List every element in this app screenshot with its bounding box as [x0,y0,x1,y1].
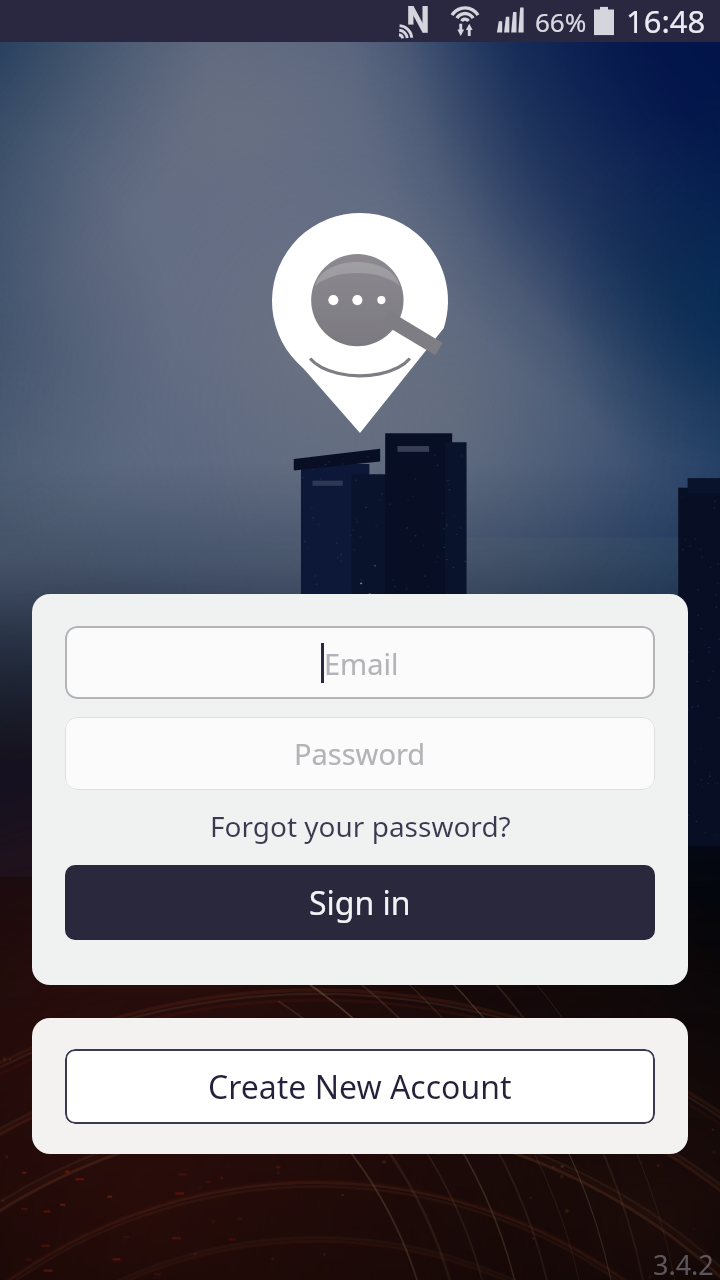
button[interactable]: Sign in [65,865,655,940]
staticText: Sign in [309,881,411,925]
staticText: Email [324,644,399,683]
button[interactable]: Create New Account [65,1049,655,1124]
staticText: Password [294,734,426,773]
staticText: Forgot your password? [210,807,511,845]
staticText: 66% [535,4,587,39]
button[interactable]: Password [65,717,655,790]
staticText: 16:48 [626,0,706,42]
button[interactable]: Email [65,626,655,699]
button[interactable]: Forgot your password? [65,800,655,852]
staticText: Create New Account [208,1065,512,1109]
staticText: 3.4.2 [653,1246,714,1280]
